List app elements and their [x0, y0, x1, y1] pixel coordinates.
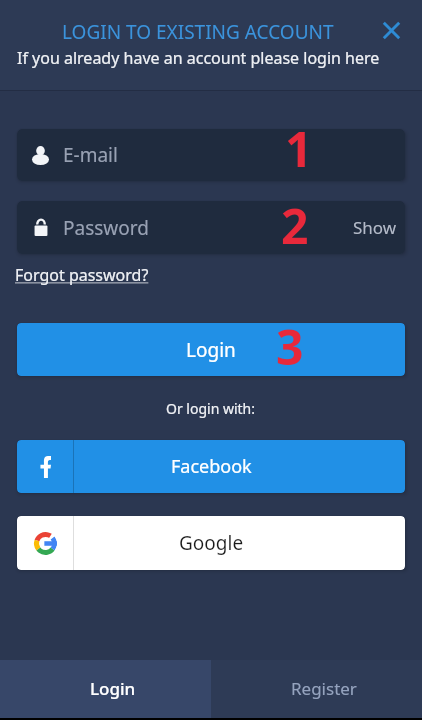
- staticText: Or login with:: [166, 399, 256, 418]
- staticText: 1: [285, 129, 313, 168]
- button[interactable]: Forgot password?: [15, 264, 149, 286]
- staticText: Forgot password?: [15, 264, 149, 286]
- button[interactable]: Close: [371, 10, 411, 50]
- staticText: If you already have an account please lo…: [17, 47, 380, 69]
- staticText: Show: [353, 216, 397, 239]
- staticText: 2: [281, 201, 309, 246]
- staticText: Login: [186, 337, 236, 363]
- staticText: LOGIN TO EXISTING ACCOUNT: [62, 19, 334, 45]
- staticText: Facebook: [171, 454, 252, 479]
- button[interactable]: Password: [17, 201, 405, 254]
- staticText: Login: [90, 677, 136, 700]
- staticText: Register: [291, 677, 357, 700]
- staticText: Password: [63, 215, 149, 241]
- staticText: E-mail: [63, 142, 118, 168]
- button[interactable]: Facebook: [17, 440, 405, 493]
- button[interactable]: E-mail: [17, 129, 405, 181]
- button[interactable]: Login: [17, 323, 405, 376]
- button[interactable]: Login: [0, 660, 211, 718]
- button[interactable]: Register: [211, 660, 422, 718]
- staticText: 3: [276, 323, 304, 367]
- button[interactable]: Show: [345, 201, 405, 254]
- staticText: Google: [179, 530, 244, 556]
- button[interactable]: Google: [17, 516, 405, 570]
